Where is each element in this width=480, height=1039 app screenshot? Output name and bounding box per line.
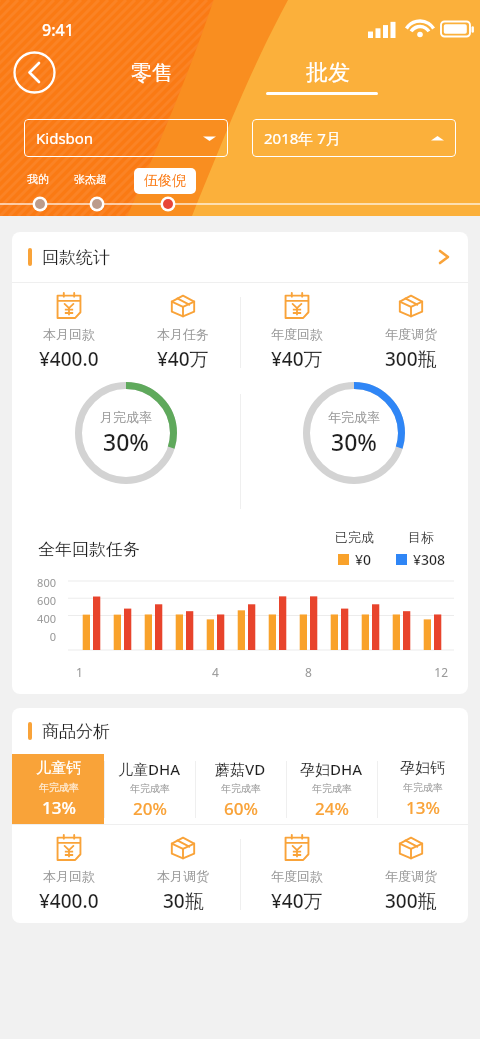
staticText: 300瓶 [385, 346, 437, 372]
staticText: 孕妇DHA [300, 759, 363, 779]
staticText: 本月回款 [43, 868, 95, 884]
staticText: 目标 [408, 529, 434, 545]
button[interactable]: Back [13, 51, 56, 94]
staticText: 年完成率 [328, 409, 380, 425]
staticText: ¥40万 [271, 346, 323, 372]
staticText: 9:41 [42, 19, 74, 41]
staticText: 年完成率 [39, 781, 79, 794]
staticText: 我的 [27, 172, 49, 186]
button[interactable]: 批发 [254, 49, 402, 97]
staticText: 300瓶 [385, 888, 437, 914]
button[interactable]: 回款统计 [12, 232, 468, 282]
staticText: 4 [169, 664, 262, 680]
staticText: ¥400.0 [39, 346, 99, 372]
staticText: 30% [331, 426, 377, 457]
staticText: 全年回款任务 [38, 539, 335, 560]
staticText: 20% [133, 797, 167, 820]
staticText: 12 [355, 664, 448, 680]
button[interactable]: 儿童DHA [104, 754, 195, 824]
staticText: 年完成率 [130, 782, 170, 795]
staticText: 年完成率 [312, 782, 352, 795]
staticText: 24% [315, 797, 349, 820]
staticText: 年度回款 [271, 868, 323, 884]
button[interactable]: 本月回款 [12, 283, 126, 381]
staticText: 2018年 7月 [264, 128, 431, 148]
staticText: 年完成率 [221, 782, 261, 795]
staticText: ¥308 [413, 550, 446, 569]
staticText: ¥400.0 [39, 888, 99, 914]
button[interactable]: 年度调货 [354, 283, 468, 381]
staticText: 年度调货 [385, 326, 437, 342]
staticText: 回款统计 [42, 247, 436, 268]
staticText: ¥40万 [271, 888, 323, 914]
staticText: 零售 [131, 60, 173, 86]
staticText: 月完成率 [100, 409, 152, 425]
button[interactable]: 年度回款 [240, 283, 354, 381]
button[interactable]: 年度调货 [354, 825, 468, 923]
staticText: 13% [406, 796, 440, 819]
button[interactable]: 年度回款 [240, 825, 354, 923]
staticText: 年度回款 [271, 326, 323, 342]
button[interactable]: 零售 [78, 49, 226, 97]
button[interactable]: 孕妇钙 [377, 754, 468, 824]
staticText: 年度调货 [385, 868, 437, 884]
staticText: 60% [224, 797, 258, 820]
staticText: 本月回款 [43, 326, 95, 342]
button[interactable]: 孕妇DHA [286, 754, 377, 824]
button[interactable]: 伍俊倪 [134, 168, 196, 194]
staticText: ¥40万 [157, 346, 209, 372]
button[interactable]: 本月调货 [126, 825, 240, 923]
staticText: 0 [49, 629, 56, 644]
staticText: 孕妇钙 [400, 759, 445, 778]
staticText: 400 [37, 611, 56, 626]
staticText: 批发 [306, 59, 350, 87]
staticText: 已完成 [335, 529, 374, 545]
button[interactable]: 儿童钙 [12, 754, 104, 824]
staticText: 本月任务 [157, 326, 209, 342]
staticText: 800 [37, 575, 56, 590]
staticText: ¥0 [355, 550, 372, 569]
staticText: 儿童钙 [36, 759, 81, 778]
staticText: 伍俊倪 [144, 172, 186, 190]
button[interactable]: 本月任务 [126, 283, 240, 381]
button[interactable]: Kidsbon [24, 119, 228, 157]
staticText: 13% [42, 796, 76, 819]
button[interactable]: 蘑菇VD [195, 754, 286, 824]
staticText: 蘑菇VD [215, 759, 266, 779]
button[interactable]: 商品分析 [28, 708, 452, 754]
staticText: Kidsbon [36, 128, 203, 148]
button[interactable]: 2018年 7月 [252, 119, 456, 157]
button[interactable]: 本月回款 [12, 825, 126, 923]
staticText: 年完成率 [403, 781, 443, 794]
staticText: 本月调货 [157, 868, 209, 884]
staticText: 600 [37, 593, 56, 608]
staticText: 30% [103, 426, 149, 457]
staticText: 张杰超 [74, 172, 107, 186]
staticText: 8 [262, 664, 355, 680]
staticText: 1 [76, 664, 169, 680]
staticText: 30瓶 [163, 888, 204, 914]
staticText: 商品分析 [42, 721, 110, 742]
staticText: 儿童DHA [118, 759, 181, 779]
